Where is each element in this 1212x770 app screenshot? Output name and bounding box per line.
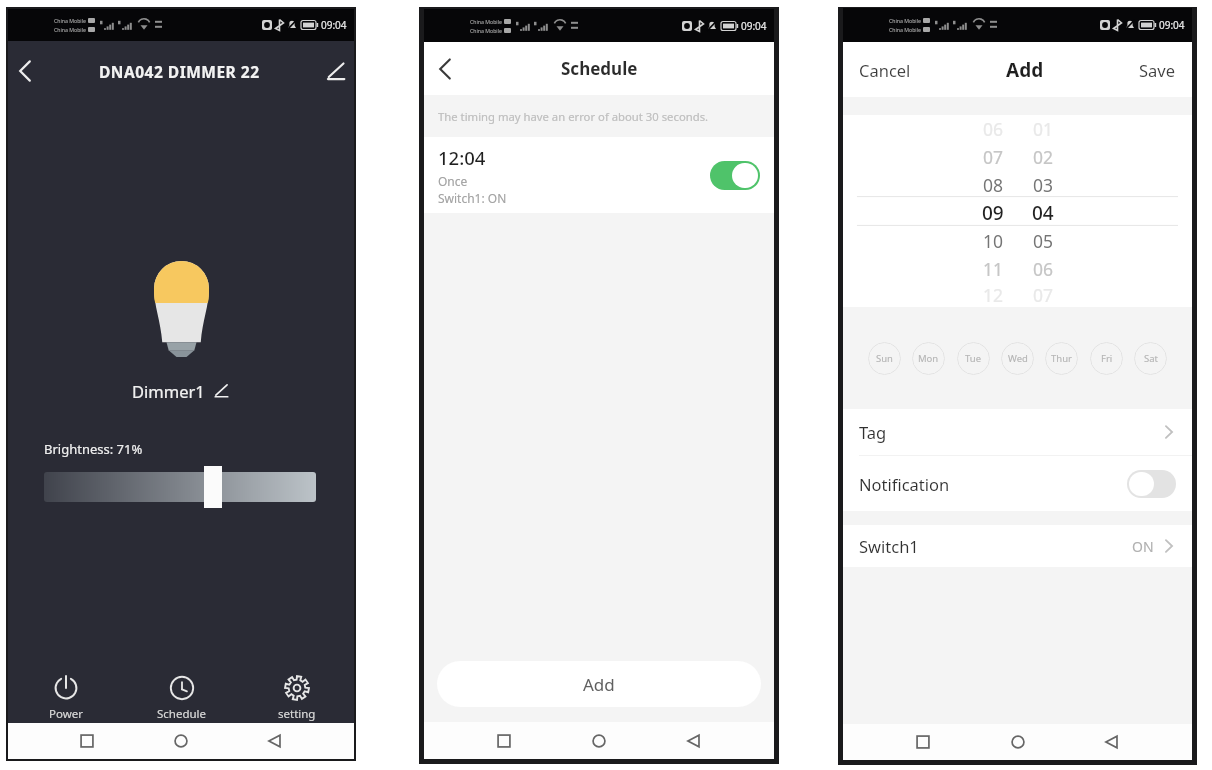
button[interactable]: Power: [8, 659, 124, 723]
staticText: China Mobile: [54, 17, 86, 24]
staticText: Once: [438, 173, 468, 189]
button[interactable]: Schedule: [124, 659, 239, 723]
staticText: Dimmer1: [132, 380, 205, 402]
staticText: Mon: [918, 352, 939, 365]
button[interactable]: Home: [1003, 727, 1033, 757]
button[interactable]: Fri: [1090, 342, 1123, 375]
staticText: Schedule: [157, 706, 207, 722]
staticText: Tag: [859, 421, 1162, 443]
staticText: 02: [1033, 145, 1054, 169]
staticText: Cancel: [859, 59, 911, 81]
staticText: Switch1: ON: [438, 190, 507, 206]
staticText: Schedule: [561, 57, 638, 80]
button[interactable]: Tue: [957, 342, 990, 375]
staticText: 08: [983, 173, 1004, 197]
staticText: China Mobile: [889, 26, 921, 33]
button[interactable]: Home: [166, 726, 196, 756]
button[interactable]: Home: [584, 726, 614, 756]
staticText: 12: [983, 283, 1004, 307]
button[interactable]: Tag: [843, 409, 1192, 455]
button[interactable]: 12:04: [424, 137, 774, 213]
button[interactable]: Switch1: [843, 525, 1192, 567]
staticText: Thur: [1051, 352, 1072, 365]
staticText: 09:04: [1159, 18, 1185, 32]
staticText: Add: [583, 673, 615, 696]
button[interactable]: Sun: [868, 342, 901, 375]
staticText: Sat: [1144, 352, 1158, 365]
button[interactable]: Mon: [912, 342, 945, 375]
staticText: Add: [1006, 57, 1044, 83]
button[interactable]: setting: [239, 659, 354, 723]
staticText: The timing may have an error of about 30…: [438, 109, 709, 124]
staticText: Switch1: [859, 535, 1132, 557]
staticText: Power: [49, 706, 83, 722]
button[interactable]: Notification toggle: [1127, 470, 1176, 498]
staticText: Tue: [965, 352, 982, 365]
staticText: ON: [1132, 537, 1154, 556]
button[interactable]: Save: [1135, 53, 1180, 87]
staticText: 07: [983, 145, 1004, 169]
staticText: 06: [983, 117, 1004, 141]
staticText: Wed: [1008, 352, 1028, 365]
staticText: China Mobile: [470, 27, 502, 34]
staticText: 09: [982, 200, 1004, 226]
button[interactable]: Back: [260, 726, 290, 756]
staticText: Save: [1139, 59, 1176, 81]
staticText: Brightness: 71%: [44, 440, 143, 458]
button[interactable]: Recents: [72, 726, 102, 756]
staticText: China Mobile: [54, 26, 86, 33]
staticText: 01: [1033, 117, 1054, 141]
staticText: 05: [1033, 229, 1054, 253]
button[interactable]: Edit device name: [318, 54, 352, 88]
staticText: China Mobile: [470, 18, 502, 25]
staticText: 11: [983, 257, 1004, 281]
staticText: 10: [983, 229, 1004, 253]
staticText: 07: [1033, 283, 1054, 307]
staticText: Fri: [1101, 352, 1113, 365]
staticText: 06: [1033, 257, 1054, 281]
button[interactable]: Back: [430, 54, 460, 84]
staticText: 12:04: [438, 145, 486, 170]
button[interactable]: Back: [10, 56, 40, 86]
staticText: 04: [1032, 200, 1054, 226]
button[interactable]: Recents: [908, 727, 938, 757]
button[interactable]: Wed: [1001, 342, 1034, 375]
button[interactable]: Add: [437, 661, 761, 707]
staticText: China Mobile: [889, 17, 921, 24]
staticText: 09:04: [741, 19, 767, 33]
button[interactable]: Thur: [1045, 342, 1078, 375]
button[interactable]: Enable schedule: [710, 161, 760, 190]
button[interactable]: Cancel: [855, 53, 915, 87]
button[interactable]: Sat: [1134, 342, 1167, 375]
button[interactable]: Back: [679, 726, 709, 756]
staticText: Notification: [859, 473, 1127, 495]
staticText: DNA042 DIMMER 22: [99, 61, 260, 82]
button[interactable]: Recents: [489, 726, 519, 756]
staticText: 03: [1033, 173, 1054, 197]
button[interactable]: Back: [1097, 727, 1127, 757]
staticText: 09:04: [321, 18, 347, 32]
staticText: setting: [278, 706, 316, 722]
button[interactable]: Rename: [212, 382, 230, 400]
staticText: Sun: [876, 352, 893, 365]
button[interactable]: Brightness slider: [44, 466, 316, 508]
